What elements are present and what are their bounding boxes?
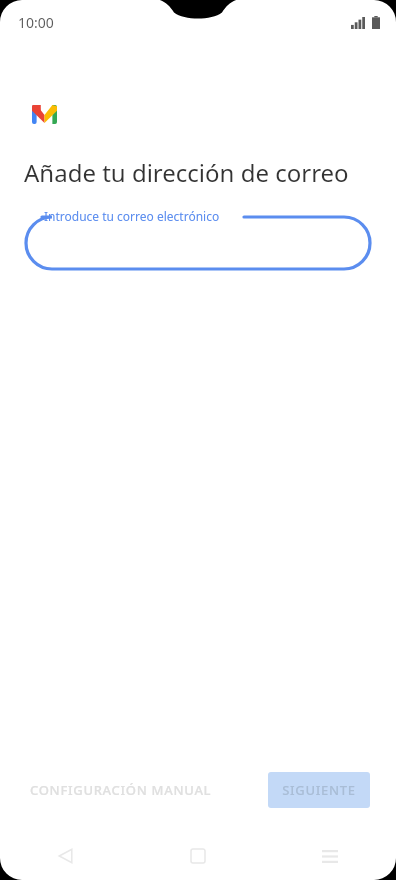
button[interactable]: Introduce tu correo electrónico [26,207,370,269]
staticText: Añade tu dirección de correo [24,156,349,189]
button[interactable]: Recent apps [264,832,396,880]
button[interactable]: SIGUIENTE [268,772,370,808]
staticText: Introduce tu correo electrónico [44,208,220,224]
button[interactable]: Back [0,832,132,880]
staticText: 10:00 [18,13,54,32]
button[interactable]: CONFIGURACIÓN MANUAL [24,771,218,809]
staticText: CONFIGURACIÓN MANUAL [30,781,212,799]
staticText: SIGUIENTE [282,781,356,799]
